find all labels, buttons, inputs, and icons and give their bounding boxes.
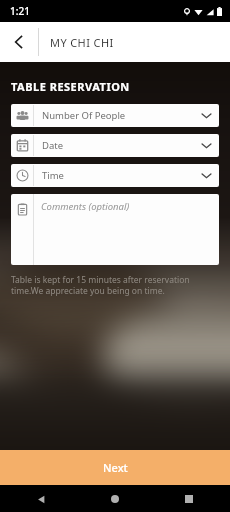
- button[interactable]: Home: [104, 488, 126, 510]
- staticText: TABLE RESERVATION: [11, 79, 130, 94]
- button[interactable]: Back: [30, 488, 52, 510]
- staticText: Table is kept for 15 minutes after reser…: [11, 274, 219, 296]
- staticText: 1:21: [10, 4, 30, 18]
- staticText: Time: [42, 169, 201, 182]
- staticText: Next: [103, 460, 128, 475]
- button[interactable]: Time: [11, 164, 219, 187]
- staticText: MY CHI CHI: [50, 35, 114, 50]
- button[interactable]: Next: [0, 450, 230, 485]
- button[interactable]: Back: [0, 22, 38, 62]
- button[interactable]: Date: [11, 134, 219, 157]
- staticText: Comments (optional): [41, 200, 130, 213]
- button[interactable]: Number Of People: [11, 104, 219, 127]
- staticText: Number Of People: [42, 109, 201, 122]
- staticText: Date: [42, 139, 201, 152]
- button[interactable]: Recent apps: [178, 488, 200, 510]
- button[interactable]: Comments (optional): [11, 194, 219, 265]
